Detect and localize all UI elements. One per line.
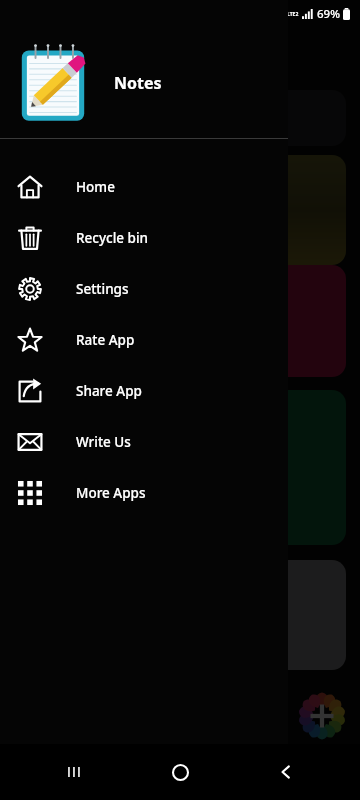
staticText: Home (76, 178, 115, 196)
other: Write Us (17, 429, 43, 455)
other: More Apps (17, 480, 43, 506)
staticText: 69% (317, 6, 340, 22)
other: Settings (17, 276, 43, 302)
other: Recycle bin (17, 225, 43, 251)
staticText: LTE2 (287, 11, 299, 18)
button[interactable]: Rate App (0, 314, 288, 365)
staticText: Notes (114, 72, 162, 94)
staticText: Rate App (76, 331, 135, 349)
button[interactable]: Write Us (0, 416, 288, 467)
button[interactable]: Back (268, 754, 304, 790)
staticText: Recycle bin (76, 229, 149, 247)
staticText: Settings (76, 280, 129, 298)
button[interactable]: Share App (0, 365, 288, 416)
button[interactable]: Add note (296, 690, 348, 742)
staticText: More Apps (76, 484, 146, 502)
button[interactable]: Home (0, 161, 288, 212)
other: Home (17, 174, 43, 200)
other: Rate App (17, 327, 43, 353)
button[interactable]: Recycle bin (0, 212, 288, 263)
button[interactable]: Recents (56, 754, 92, 790)
button[interactable]: More Apps (0, 467, 288, 518)
staticText: Write Us (76, 433, 131, 451)
staticText: Share App (76, 382, 142, 400)
button[interactable]: Home (160, 752, 200, 792)
other: Share App (17, 378, 43, 404)
button[interactable]: Settings (0, 263, 288, 314)
